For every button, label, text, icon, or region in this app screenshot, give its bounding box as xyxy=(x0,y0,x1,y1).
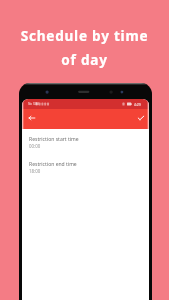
staticText: 00:00 xyxy=(29,143,41,149)
button[interactable]: Restriction end time xyxy=(22,161,149,174)
staticText: No SIM xyxy=(28,102,39,106)
button[interactable]: Restriction start time xyxy=(22,136,149,149)
staticText: 4:29 xyxy=(134,102,141,107)
button[interactable]: Navigate up xyxy=(25,111,39,125)
staticText: Restriction start time xyxy=(29,136,79,143)
button[interactable]: Done xyxy=(134,111,148,125)
staticText: Restriction end time xyxy=(29,161,77,168)
staticText: Schedule by time of day xyxy=(0,26,169,69)
staticText: 18:00 xyxy=(29,168,41,174)
